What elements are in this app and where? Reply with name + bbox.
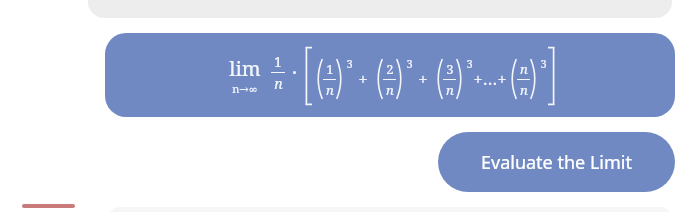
staticText: n: [386, 81, 394, 99]
staticText: 2: [386, 60, 394, 78]
staticText: +: [358, 67, 368, 90]
staticText: 3: [540, 56, 547, 71]
button[interactable]: Evaluate the Limit: [438, 132, 675, 192]
staticText: n→∞: [232, 81, 258, 96]
staticText: 3: [406, 56, 413, 71]
staticText: 3: [466, 56, 473, 71]
staticText: lim: [229, 55, 261, 82]
staticText: n: [446, 81, 454, 99]
staticText: +…+: [473, 67, 507, 90]
button[interactable]: lim: [105, 33, 675, 117]
staticText: n: [326, 81, 334, 99]
staticText: 1: [274, 52, 282, 71]
staticText: n: [274, 74, 283, 93]
staticText: +: [418, 67, 428, 90]
staticText: Evaluate the Limit: [481, 150, 632, 175]
button[interactable]: Selected tab indicator: [22, 204, 75, 208]
staticText: n: [520, 81, 528, 99]
staticText: n: [520, 60, 528, 78]
staticText: 1: [326, 60, 334, 78]
staticText: ·: [292, 59, 297, 86]
staticText: 3: [446, 60, 454, 78]
staticText: 3: [346, 56, 353, 71]
